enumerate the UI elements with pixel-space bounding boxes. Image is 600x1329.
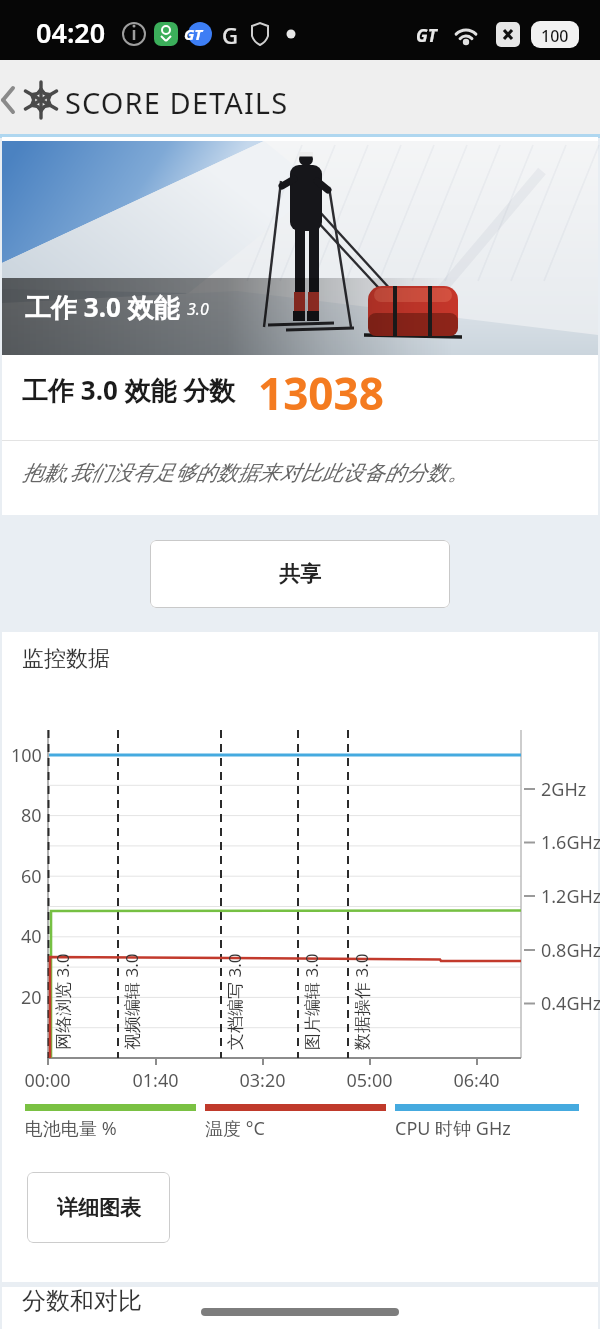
button[interactable]: SCORE DETAILS (0, 60, 600, 134)
staticText: SCORE DETAILS (65, 83, 289, 122)
staticText: 电池电量 % (25, 1116, 117, 1141)
button[interactable]: 详细图表 (27, 1172, 170, 1243)
staticText: 工作 3.0 效能 (25, 289, 180, 325)
staticText: CPU 时钟 GHz (395, 1116, 511, 1141)
staticText: 100 (541, 25, 569, 47)
staticText: 抱歉,我们没有足够的数据来对比此设备的分数。 (22, 458, 469, 487)
staticText: 分数和对比 (22, 1286, 142, 1316)
staticText: GT (416, 24, 437, 47)
staticText: 04:20 (36, 14, 106, 51)
staticText: 13038 (258, 363, 384, 423)
staticText: 工作 3.0 效能 分数 (22, 372, 236, 408)
staticText: G (222, 20, 238, 50)
staticText: 详细图表 (57, 1195, 141, 1221)
staticText: 监控数据 (22, 645, 110, 673)
staticText: 3.0 (187, 298, 209, 320)
staticText: 共享 (279, 561, 321, 587)
staticText: GT (184, 24, 203, 44)
button[interactable]: 共享 (150, 540, 450, 608)
staticText: 温度 °C (205, 1116, 265, 1141)
